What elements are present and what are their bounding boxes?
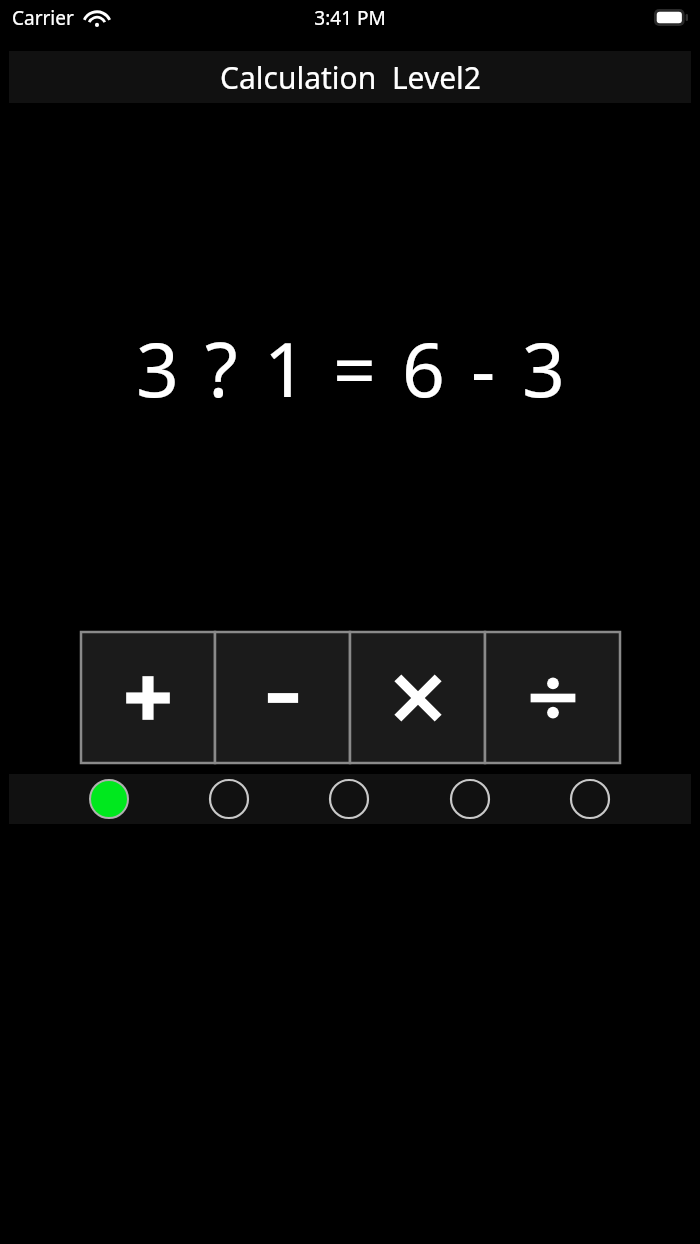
staticText: 1 [264, 317, 307, 419]
staticText: 3 [136, 317, 179, 419]
staticText: ? [205, 317, 238, 419]
button[interactable]: Multiply [350, 632, 485, 763]
button[interactable]: Divide [485, 632, 620, 763]
staticText: Calculation Level2 [220, 57, 481, 98]
staticText: 6 [402, 317, 445, 419]
staticText: 3:41 PM [314, 5, 386, 31]
button[interactable]: Plus [81, 632, 215, 763]
staticText: 3 [522, 317, 565, 419]
staticText: = [333, 317, 376, 419]
staticText: Carrier [12, 5, 74, 31]
button[interactable]: Minus [215, 632, 350, 763]
staticText: - [471, 317, 496, 419]
